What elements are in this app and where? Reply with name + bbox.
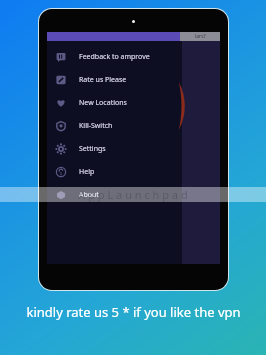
staticText: kindly rate us 5 * if you like the vpn	[26, 303, 241, 321]
button[interactable]: Feedback to amprove	[47, 45, 182, 68]
staticText: A p p L a u n c h p a d	[78, 187, 188, 202]
staticText: Help	[79, 167, 95, 177]
button[interactable]: New Locations	[47, 91, 182, 114]
button[interactable]: About	[47, 183, 182, 206]
staticText: Kill-Switch	[79, 121, 113, 131]
staticText: Rate us Please	[79, 75, 127, 85]
staticText: Feedback to amprove	[79, 52, 150, 62]
button[interactable]: Settings	[47, 137, 182, 160]
staticText: About	[79, 190, 99, 200]
button[interactable]: Kill-Switch	[47, 114, 182, 137]
button[interactable]: Help	[47, 160, 182, 183]
staticText: lars?	[195, 33, 206, 40]
staticText: Settings	[79, 144, 106, 154]
staticText: New Locations	[79, 98, 127, 108]
button[interactable]: Rate us Please	[47, 68, 182, 91]
